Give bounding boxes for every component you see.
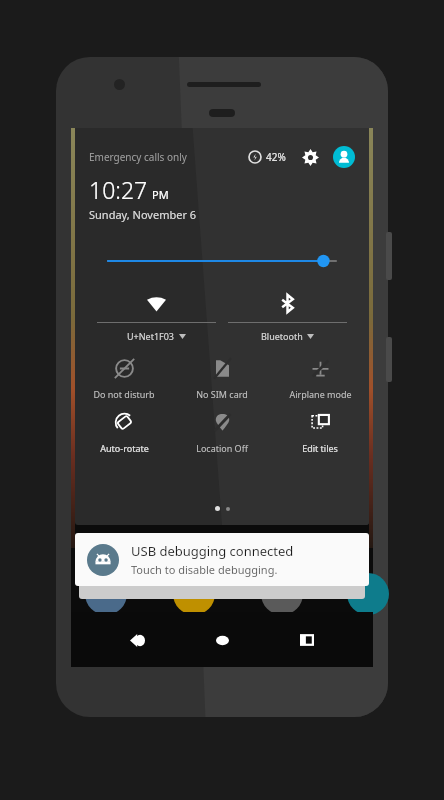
- staticText: No SIM card: [196, 388, 248, 400]
- staticText: Auto-rotate: [100, 442, 149, 454]
- staticText: Location Off: [196, 442, 248, 454]
- staticText: 42%: [266, 150, 286, 164]
- staticText: Airplane mode: [289, 388, 352, 400]
- button[interactable]: Location Off: [173, 412, 271, 454]
- staticText: Do not disturb: [93, 388, 155, 400]
- staticText: Sunday, November 6: [89, 207, 197, 222]
- button[interactable]: User account: [333, 146, 355, 168]
- staticText: Emergency calls only: [89, 150, 187, 164]
- button[interactable]: No SIM card: [173, 358, 271, 400]
- button[interactable]: Auto-rotate: [75, 412, 173, 454]
- staticText: U+Net1F03: [127, 330, 175, 342]
- button[interactable]: Airplane mode: [271, 358, 369, 400]
- button[interactable]: Recents: [288, 621, 326, 659]
- button[interactable]: Home: [203, 621, 241, 659]
- button[interactable]: Edit tiles: [271, 412, 369, 454]
- staticText: Touch to disable debugging.: [131, 562, 278, 577]
- staticText: USB debugging connected: [131, 542, 294, 560]
- button[interactable]: U+Net1F03: [91, 288, 222, 342]
- button[interactable]: [108, 250, 336, 272]
- staticText: Bluetooth: [261, 330, 303, 342]
- button[interactable]: Back: [118, 621, 156, 659]
- staticText: PM: [152, 187, 169, 202]
- staticText: 10:27: [89, 174, 148, 205]
- button[interactable]: USB debugging connected: [75, 533, 369, 586]
- staticText: Edit tiles: [302, 442, 338, 454]
- button[interactable]: Bluetooth: [222, 288, 353, 342]
- button[interactable]: Settings: [300, 147, 320, 167]
- button[interactable]: Do not disturb: [75, 358, 173, 400]
